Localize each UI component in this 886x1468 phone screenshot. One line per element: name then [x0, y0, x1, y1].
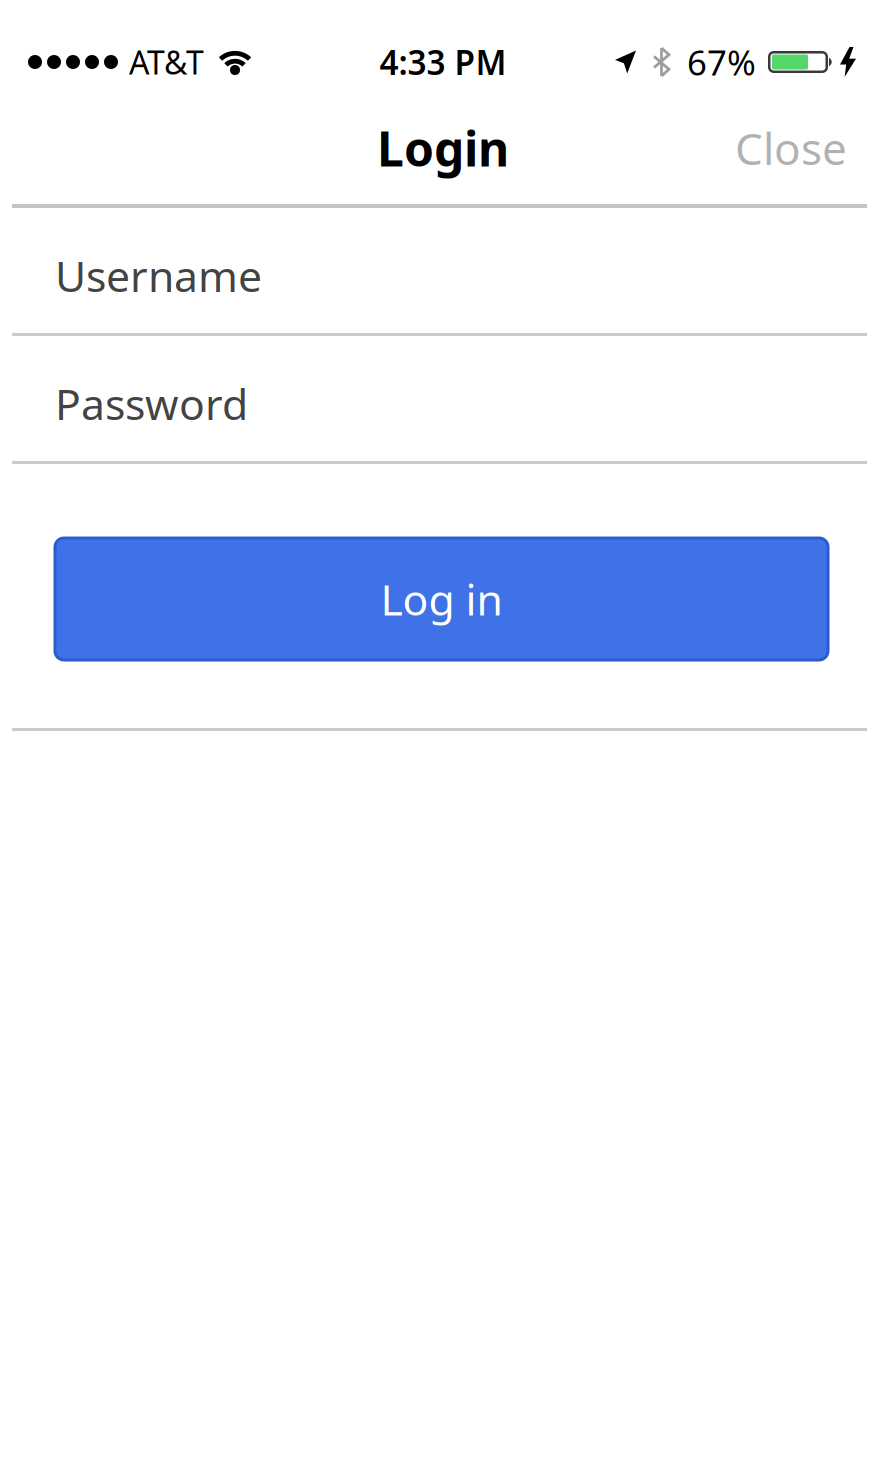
button[interactable]: Password — [0, 336, 886, 461]
button[interactable]: Log in — [55, 538, 828, 660]
staticText: Log in — [380, 571, 502, 627]
staticText: Login — [377, 116, 509, 180]
staticText: Username — [55, 247, 262, 304]
staticText: 67% — [687, 39, 756, 85]
staticText: 4:33 PM — [379, 40, 506, 84]
staticText: Password — [55, 375, 248, 432]
button[interactable]: Username — [0, 208, 886, 333]
button[interactable]: Close — [735, 119, 847, 177]
staticText: AT&T — [129, 41, 204, 83]
staticText: Close — [735, 119, 847, 177]
